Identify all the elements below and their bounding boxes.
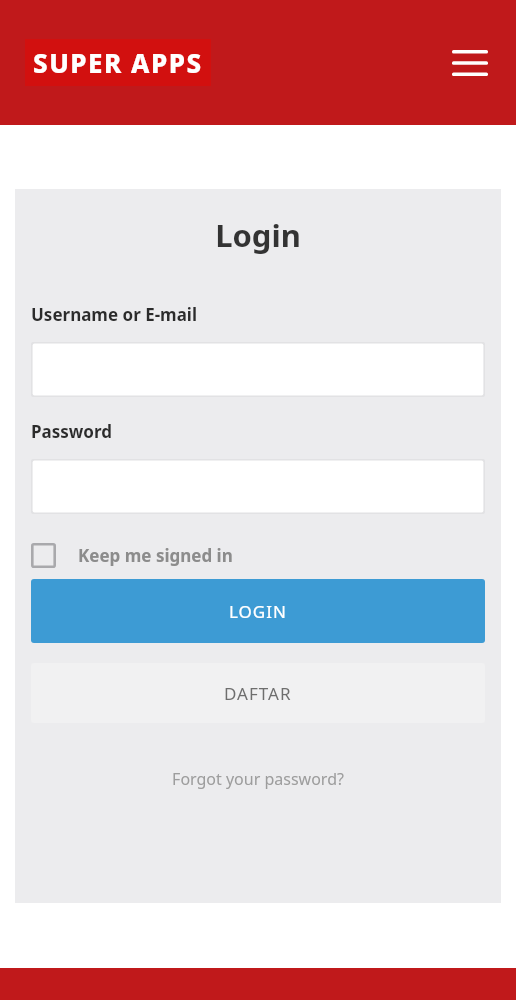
staticText: LOGIN [229,600,287,623]
button[interactable]: Open navigation menu [444,37,496,89]
button[interactable]: Forgot your password? [31,768,485,790]
staticText: Login [31,214,485,256]
staticText: DAFTAR [224,682,292,705]
button[interactable]: DAFTAR [31,663,485,723]
staticText: Password [31,420,112,443]
staticText: Username or E-mail [31,303,198,326]
staticText: Keep me signed in [78,544,233,567]
button[interactable] [31,342,485,397]
button[interactable] [31,459,485,514]
staticText: SUPER APPS [33,45,203,80]
button[interactable]: SUPER APPS [25,39,211,86]
button[interactable]: Keep me signed in [31,540,233,571]
button[interactable]: LOGIN [31,579,485,643]
